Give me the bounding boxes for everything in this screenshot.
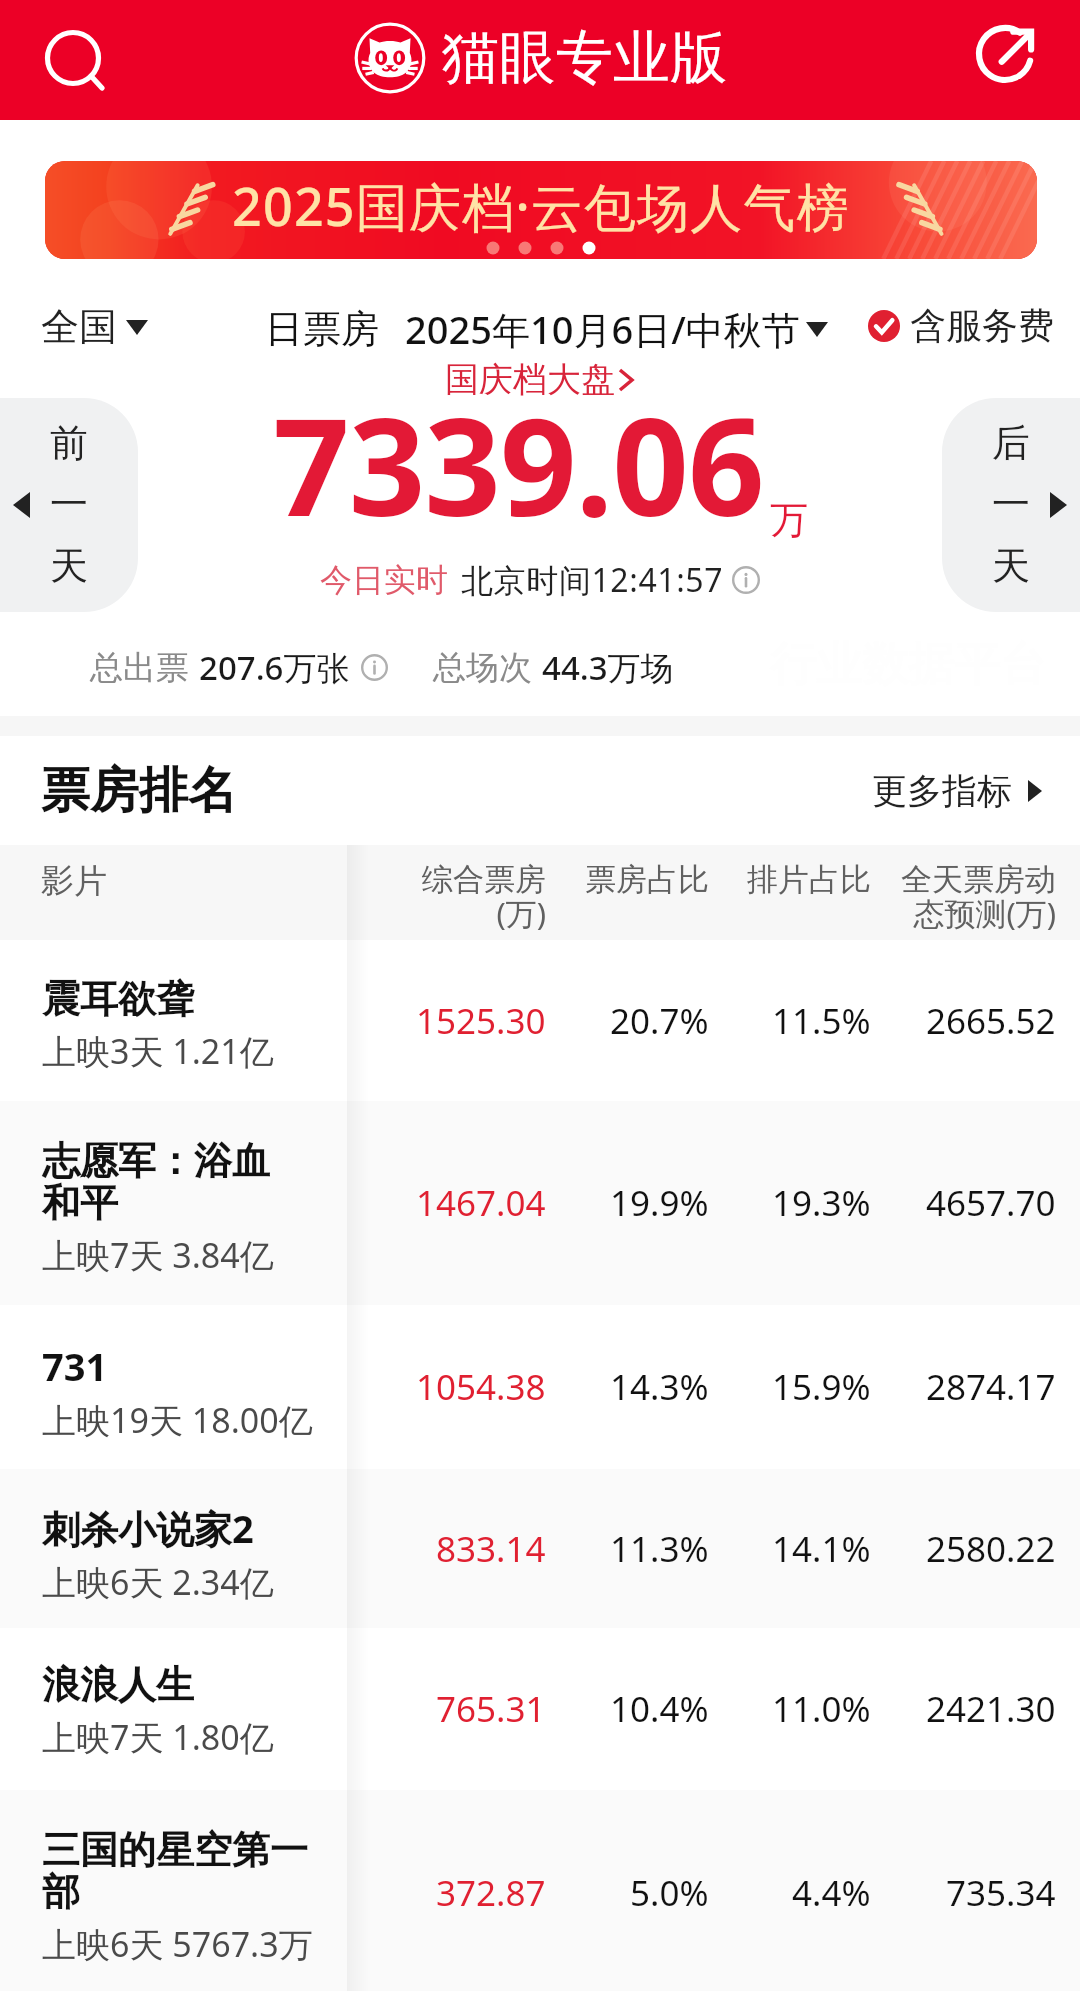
staticText: 5.0% <box>630 1869 709 1917</box>
staticText: 765.31 <box>436 1685 546 1733</box>
staticText: 2665.52 <box>926 997 1056 1045</box>
staticText: 全国 <box>41 303 117 351</box>
staticText: 含服务费 <box>910 303 1054 348</box>
staticText: 4657.70 <box>926 1179 1056 1227</box>
staticText: 1467.04 <box>416 1179 546 1227</box>
staticText: 833.14 <box>436 1525 546 1573</box>
button[interactable]: 国庆档大盘 <box>445 358 635 401</box>
staticText: 上映19天 18.00亿 <box>42 1397 313 1443</box>
staticText: 后 一 天 <box>992 419 1030 591</box>
staticText: 浪浪人生 <box>42 1661 194 1709</box>
staticText: 上映7天 1.80亿 <box>42 1714 274 1760</box>
staticText: 10.4% <box>610 1685 709 1733</box>
staticText: 15.9% <box>772 1363 871 1411</box>
staticText: 影片 <box>41 860 107 902</box>
staticText: 北京时间12:41:57 <box>461 558 724 602</box>
staticText: 更多指标 <box>872 769 1012 813</box>
staticText: 日票房 <box>265 305 379 353</box>
button[interactable]: 浪浪人生 <box>0 1628 1080 1790</box>
button[interactable]: 三国的星空第一 部 <box>0 1790 1080 1991</box>
staticText: 2025国庆档·云包场人气榜 <box>232 170 850 241</box>
staticText: 207.6万张 <box>199 645 350 690</box>
staticText: 1525.30 <box>416 997 546 1045</box>
staticText: 1054.38 <box>416 1363 546 1411</box>
button[interactable]: 2025国庆档·云包场人气榜 <box>45 161 1037 259</box>
staticText: 猫眼专业版 <box>442 22 727 94</box>
staticText: 上映3天 1.21亿 <box>42 1028 274 1074</box>
staticText: 刺杀小说家2 <box>42 1502 254 1554</box>
staticText: 11.0% <box>772 1685 871 1733</box>
button[interactable]: Search <box>28 13 122 107</box>
button[interactable]: 震耳欲聋 <box>0 940 1080 1101</box>
staticText: 上映6天 2.34亿 <box>42 1559 274 1605</box>
staticText: 731 <box>42 1340 108 1392</box>
staticText: 11.3% <box>610 1525 709 1573</box>
staticText: 上映7天 3.84亿 <box>42 1232 274 1278</box>
button[interactable]: 2025年10月6日/中秋节 <box>405 303 828 355</box>
staticText: 志愿军：浴血 和平 <box>42 1137 270 1227</box>
staticText: 19.9% <box>610 1179 709 1227</box>
staticText: 票房排名 <box>41 760 237 822</box>
button[interactable]: 后 一 天 <box>942 398 1080 612</box>
button[interactable]: 731 <box>0 1305 1080 1469</box>
staticText: 2421.30 <box>926 1685 1056 1733</box>
button[interactable]: 更多指标 <box>872 769 1042 813</box>
staticText: 万 <box>770 496 808 544</box>
button[interactable]: Share <box>961 6 1055 100</box>
staticText: 总场次 <box>433 647 532 689</box>
button[interactable]: 前 一 天 <box>0 398 138 612</box>
button[interactable]: 刺杀小说家2 <box>0 1469 1080 1628</box>
staticText: 44.3万场 <box>542 645 674 690</box>
staticText: 19.3% <box>772 1179 871 1227</box>
staticText: 2874.17 <box>926 1363 1056 1411</box>
staticText: 国庆档大盘 <box>445 358 615 401</box>
staticText: 11.5% <box>772 997 871 1045</box>
staticText: 上映6天 5767.3万 <box>42 1921 313 1967</box>
staticText: 全天票房动 态预测(万) <box>901 860 1056 934</box>
staticText: 综合票房 (万) <box>422 860 546 934</box>
staticText: 三国的星空第一 部 <box>42 1826 308 1916</box>
staticText: 735.34 <box>946 1869 1056 1917</box>
staticText: 372.87 <box>436 1869 546 1917</box>
staticText: 7339.06 <box>273 373 764 556</box>
staticText: 14.1% <box>772 1525 871 1573</box>
staticText: 票房占比 <box>585 860 709 899</box>
staticText: 2580.22 <box>926 1525 1056 1573</box>
staticText: 2025年10月6日/中秋节 <box>405 303 800 355</box>
staticText: 排片占比 <box>747 860 871 899</box>
staticText: 4.4% <box>792 1869 871 1917</box>
button[interactable]: 志愿军：浴血 和平 <box>0 1101 1080 1305</box>
button[interactable]: 全国 <box>41 303 148 351</box>
staticText: 震耳欲聋 <box>42 975 194 1023</box>
staticText: 14.3% <box>610 1363 709 1411</box>
staticText: 总出票 <box>90 647 189 689</box>
button[interactable]: 含服务费 <box>868 303 1054 348</box>
staticText: 前 一 天 <box>50 419 88 591</box>
staticText: 20.7% <box>610 997 709 1045</box>
staticText: 今日实时 <box>320 560 448 600</box>
